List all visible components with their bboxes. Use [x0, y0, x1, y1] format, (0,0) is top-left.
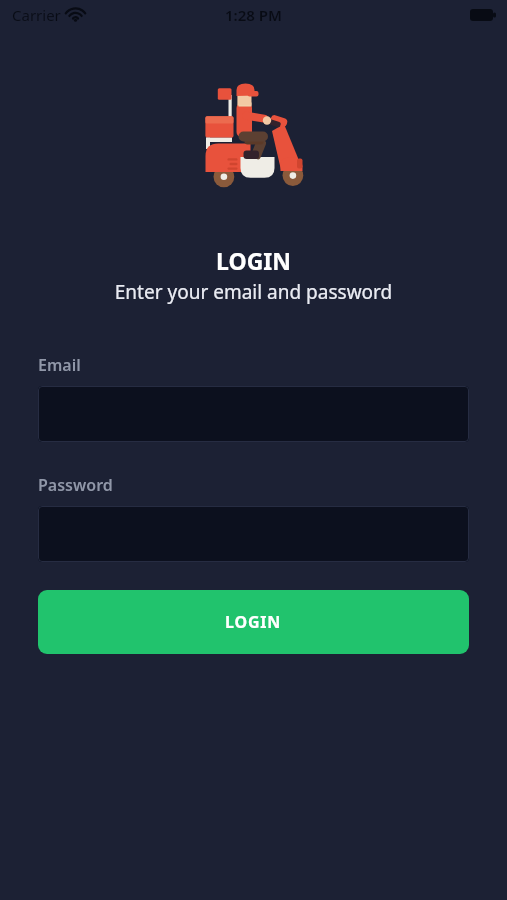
staticText: Password	[38, 474, 113, 496]
staticText: Carrier	[12, 5, 61, 25]
staticText: 1:28 PM	[225, 5, 282, 25]
button[interactable]	[38, 506, 469, 562]
staticText: LOGIN	[0, 245, 507, 276]
staticText: Email	[38, 354, 81, 376]
staticText: LOGIN	[225, 611, 282, 633]
button[interactable]	[38, 386, 469, 442]
staticText: Enter your email and password	[0, 279, 507, 305]
button[interactable]: LOGIN	[38, 590, 469, 654]
